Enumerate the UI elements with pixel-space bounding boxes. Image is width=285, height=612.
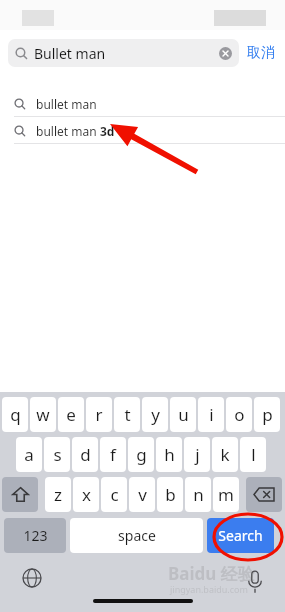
button[interactable]: 取消 [239,44,277,62]
button[interactable]: Dictate [246,570,264,594]
button[interactable]: Shift [2,477,38,512]
staticText: e [66,403,76,426]
staticText: z [54,483,62,506]
button[interactable]: y [142,397,168,432]
button[interactable]: h [156,437,182,472]
button[interactable]: Bullet man [8,39,239,67]
staticText: h [164,443,175,466]
staticText: bullet man [36,123,100,139]
button[interactable]: o [226,397,252,432]
button[interactable]: r [86,397,112,432]
button[interactable]: j [184,437,210,472]
staticText: bullet man [36,96,97,112]
staticText: Search [218,526,263,545]
staticText: l [251,443,256,466]
button[interactable]: m [213,477,239,512]
button[interactable]: a [16,437,42,472]
staticText: y [151,403,160,426]
button[interactable]: b [157,477,183,512]
button[interactable]: u [170,397,196,432]
button[interactable]: e [58,397,84,432]
staticText: u [178,403,189,426]
staticText: f [110,443,116,466]
button[interactable]: k [212,437,238,472]
button[interactable]: bullet man [0,90,285,117]
staticText: k [220,443,230,466]
staticText: b [165,483,176,506]
button[interactable]: l [240,437,266,472]
button[interactable]: t [114,397,140,432]
button[interactable]: Change keyboard [22,568,42,588]
staticText: jingyan.baidu.com [170,583,248,595]
button[interactable]: g [128,437,154,472]
staticText: j [195,443,200,466]
staticText: o [234,403,245,426]
button[interactable]: q [2,397,28,432]
staticText: a [24,443,34,466]
button[interactable]: w [30,397,56,432]
staticText: d [80,443,91,466]
staticText: space [118,526,156,545]
staticText: g [136,443,147,466]
staticText: n [193,483,204,506]
staticText: 3d [100,123,115,139]
staticText: t [124,403,131,426]
staticText: m [218,483,234,506]
staticText: i [209,403,214,426]
button[interactable]: f [100,437,126,472]
button[interactable]: Backspace [246,477,282,512]
button[interactable]: n [185,477,211,512]
button[interactable]: z [45,477,71,512]
staticText: p [262,403,273,426]
button[interactable]: d [72,437,98,472]
button[interactable]: v [129,477,155,512]
staticText: q [10,403,21,426]
staticText: Baidu 经验 [168,562,255,585]
staticText: v [138,483,147,506]
staticText: w [36,403,50,426]
button[interactable]: Clear text [219,47,232,60]
button[interactable]: c [101,477,127,512]
staticText: x [82,483,91,506]
button[interactable]: space [70,518,203,553]
staticText: c [110,483,119,506]
button[interactable]: i [198,397,224,432]
staticText: Bullet man [34,44,106,63]
staticText: 123 [23,526,48,545]
button[interactable]: x [73,477,99,512]
button[interactable]: 123 [4,518,66,553]
button[interactable]: bullet man [0,117,285,144]
staticText: s [53,443,62,466]
button[interactable]: p [254,397,280,432]
button[interactable]: Search [207,518,274,553]
button[interactable]: s [44,437,70,472]
staticText: 取消 [247,44,275,62]
staticText: r [95,403,103,426]
